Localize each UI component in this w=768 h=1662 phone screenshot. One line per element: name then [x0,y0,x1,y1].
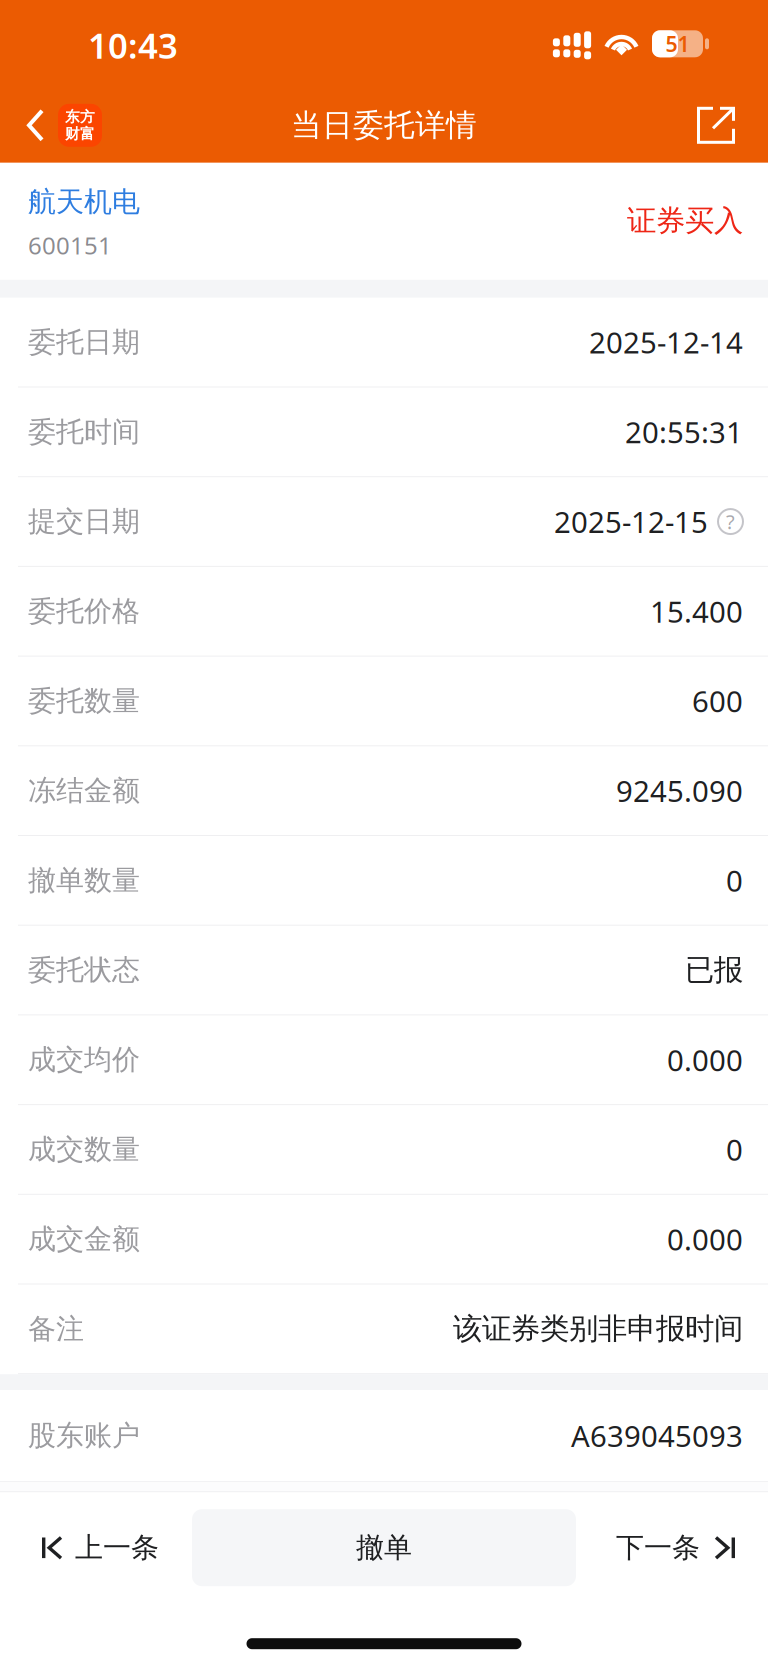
staticText: 20:55:31 [625,412,743,451]
staticText: 9245.090 [616,771,743,810]
staticText: 备注 [28,1312,84,1346]
staticText: A639045093 [571,1416,743,1455]
staticText: 该证券类别非申报时间 [453,1311,743,1347]
staticText: 冻结金额 [28,773,140,808]
staticText: 0.000 [667,1220,743,1259]
staticText: 航天机电 [28,185,140,219]
staticText: 已报 [685,952,743,988]
staticText: 委托时间 [28,415,140,449]
button[interactable]: 撤单 [192,1509,576,1586]
staticText: 下一条 [616,1530,700,1565]
button[interactable]: 下一条 [576,1509,768,1586]
staticText: 成交均价 [28,1043,140,1077]
staticText: 10:43 [88,22,178,68]
staticText: 2025-12-14 [589,323,743,362]
staticText: 提交日期 [28,504,140,539]
staticText: 撤单数量 [28,863,140,898]
staticText: 委托状态 [28,953,140,987]
staticText: 当日委托详情 [291,106,477,144]
staticText: 0.000 [667,1040,743,1079]
staticText: 委托数量 [28,684,140,718]
button[interactable]: 上一条 [0,1509,192,1586]
staticText: 财富 [65,125,95,143]
staticText: ? [726,508,735,535]
staticText: 成交金额 [28,1222,140,1256]
staticText: 撤单 [356,1530,412,1565]
staticText: 证券买入 [627,203,743,239]
staticText: 0 [726,1130,743,1169]
staticText: 委托日期 [28,325,140,359]
staticText: 委托价格 [28,594,140,628]
button[interactable]: Share [675,88,768,162]
staticText: 600 [692,681,743,720]
staticText: 600151 [28,229,112,261]
staticText: 东方 [65,108,95,126]
staticText: 51 [665,30,689,58]
button[interactable]: 东方 [0,88,116,162]
staticText: 2025-12-15 [554,502,708,541]
staticText: 成交数量 [28,1132,140,1167]
staticText: 0 [726,861,743,900]
staticText: 上一条 [75,1530,159,1565]
staticText: 15.400 [650,592,743,631]
staticText: 股东账户 [28,1418,140,1453]
button[interactable]: More info [708,509,743,534]
